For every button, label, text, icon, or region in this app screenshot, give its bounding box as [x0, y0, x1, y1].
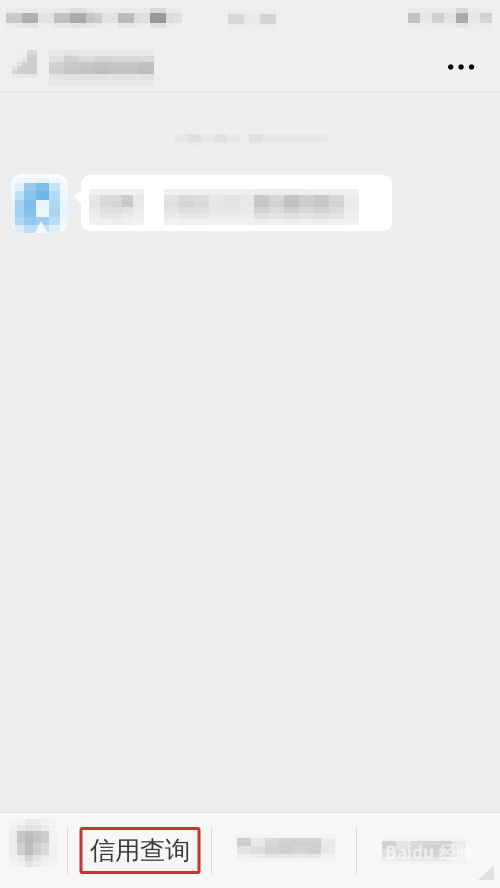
staticText: Baidu 经验 — [385, 840, 473, 863]
button[interactable]: 信用查询 — [68, 813, 212, 888]
button[interactable]: Menu item — [357, 813, 500, 888]
button[interactable]: Back — [0, 36, 200, 92]
button[interactable]: Voice input — [0, 813, 67, 888]
button[interactable]: Menu item — [212, 813, 357, 888]
staticText: 信用查询 — [90, 835, 190, 866]
button[interactable]: More options — [434, 36, 500, 92]
